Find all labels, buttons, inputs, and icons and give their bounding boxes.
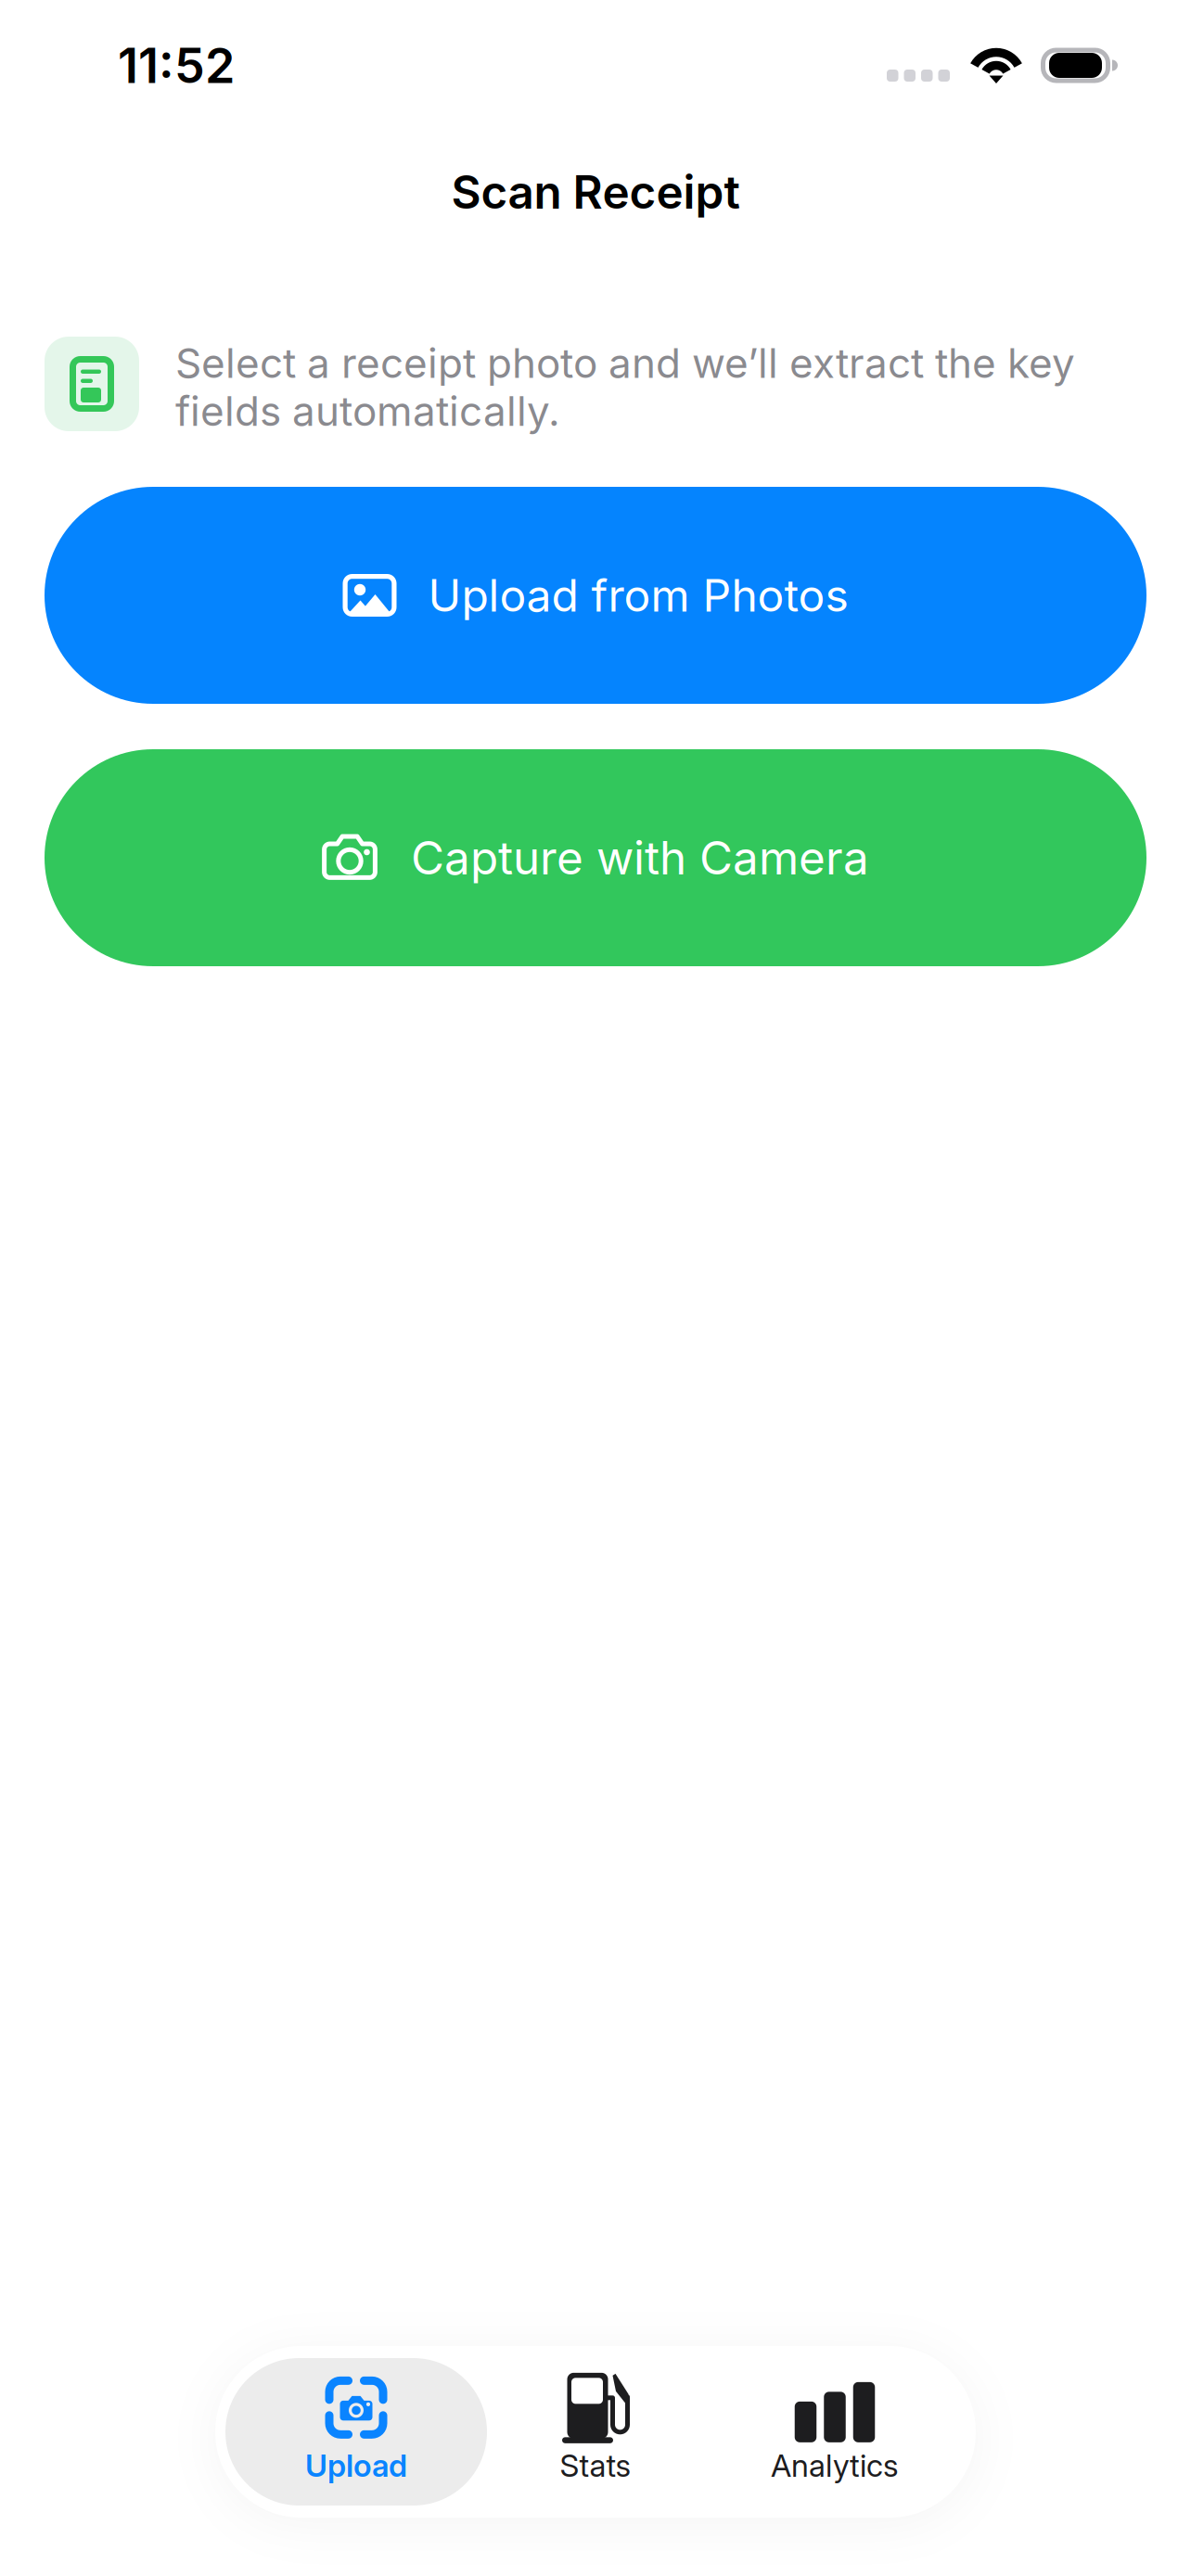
staticText: Upload from Photos — [428, 569, 848, 622]
staticText: Select a receipt photo and we’ll extract… — [175, 339, 1075, 435]
button[interactable]: Upload from Photos — [45, 487, 1146, 704]
button[interactable]: Upload — [225, 2358, 487, 2506]
button[interactable]: Capture with Camera — [45, 749, 1146, 966]
staticText: Upload — [305, 2447, 407, 2484]
staticText: 11:52 — [118, 36, 235, 94]
button[interactable]: Analytics — [704, 2358, 966, 2506]
staticText: Scan Receipt — [451, 164, 740, 220]
staticText: Stats — [560, 2447, 631, 2484]
staticText: Capture with Camera — [411, 831, 869, 885]
button[interactable]: Stats — [487, 2358, 704, 2506]
staticText: Analytics — [771, 2447, 899, 2484]
